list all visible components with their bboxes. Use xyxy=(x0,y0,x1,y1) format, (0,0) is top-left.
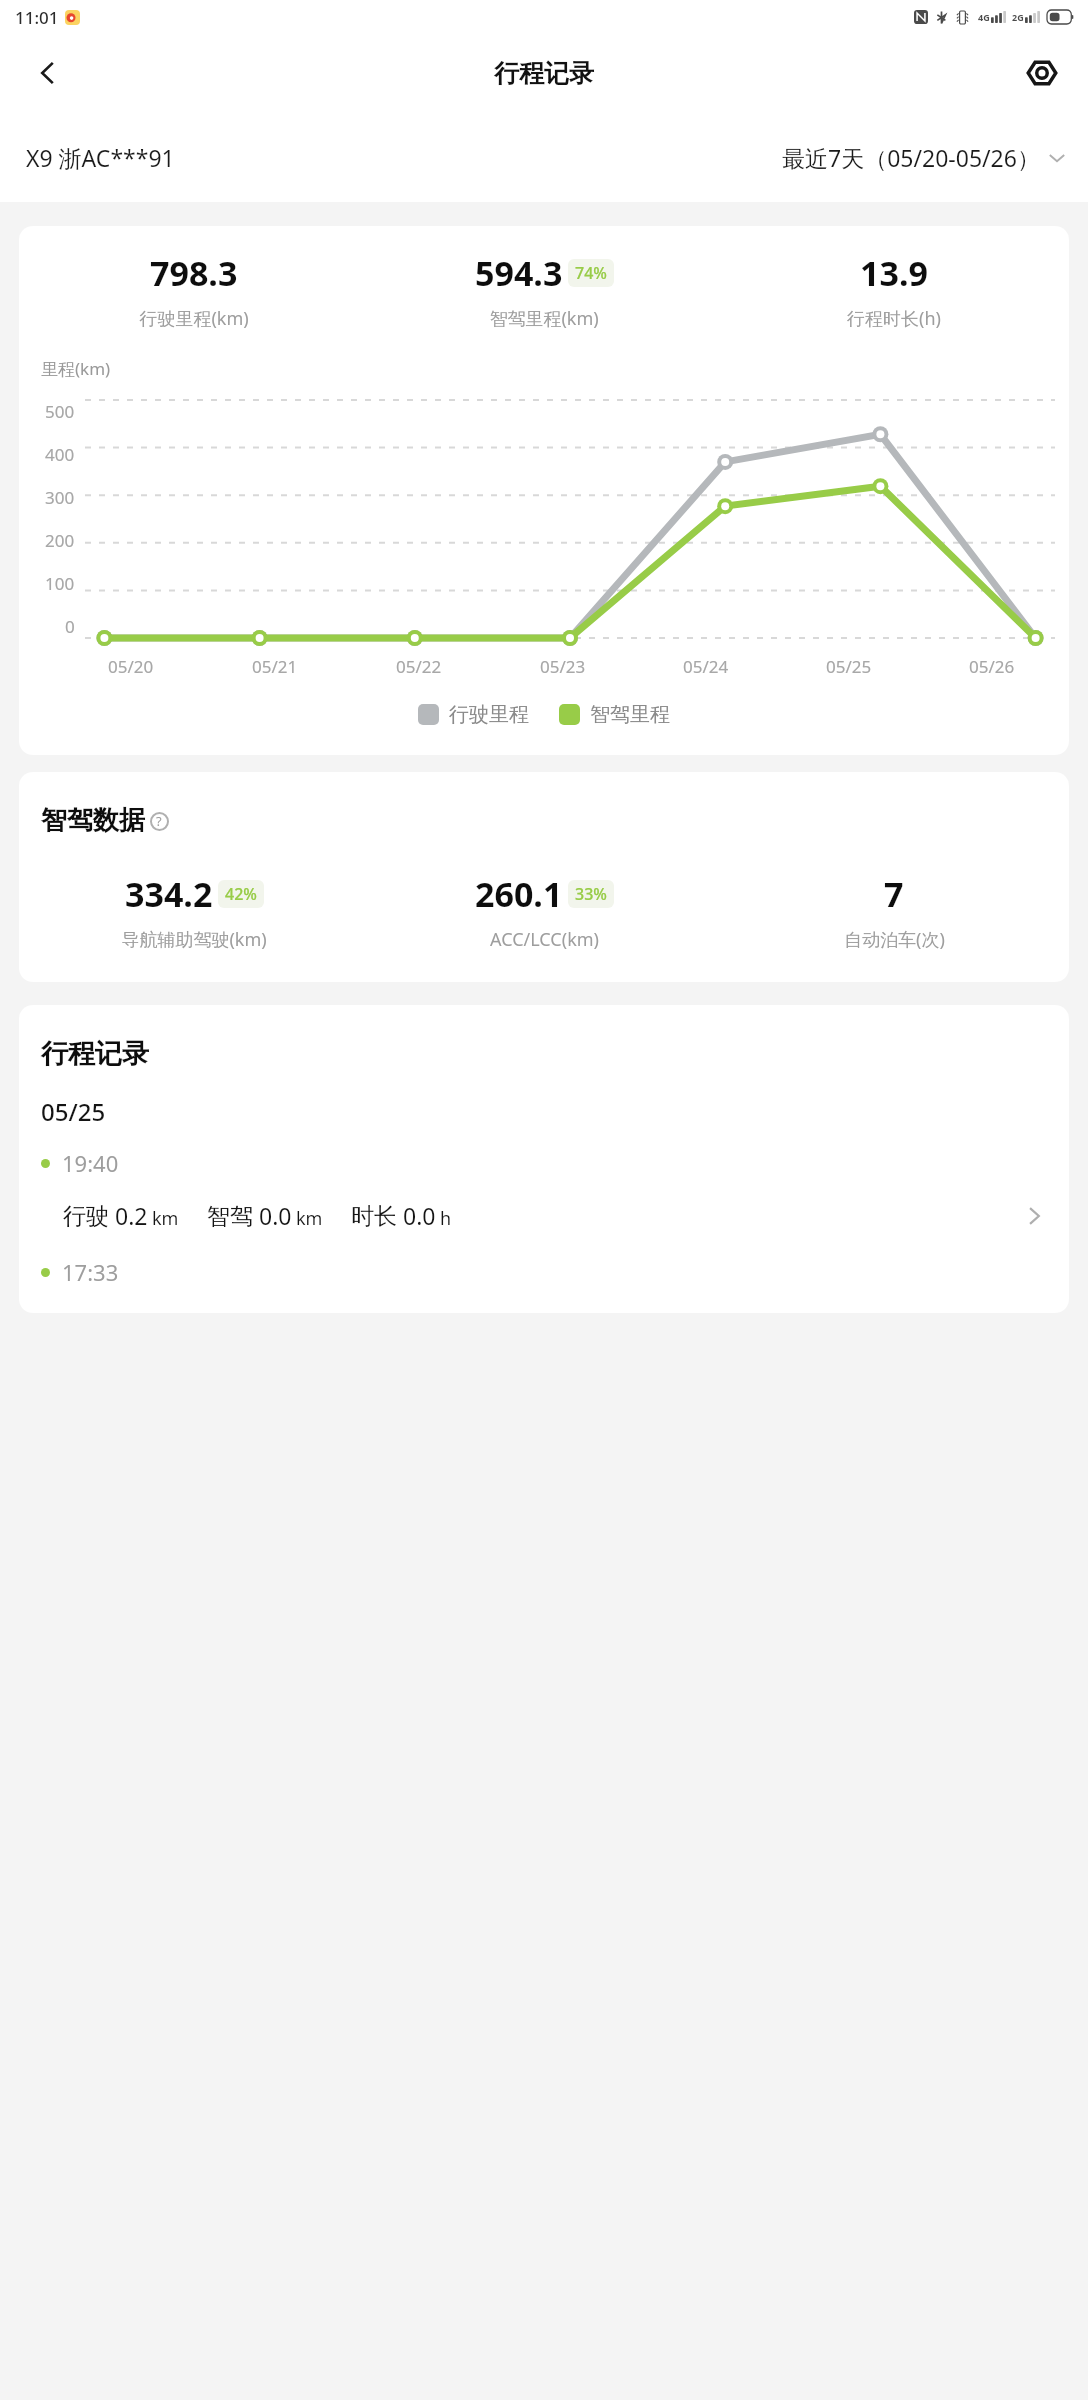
staticText: 11:01 xyxy=(15,6,59,29)
staticText: 798.3 xyxy=(150,250,238,296)
button[interactable]: 260.1 xyxy=(369,871,719,952)
button[interactable]: 13.9 xyxy=(719,250,1069,331)
staticText: 200 xyxy=(45,529,75,552)
staticText: 17:33 xyxy=(62,1257,119,1287)
staticText: 74% xyxy=(575,262,607,284)
staticText: 行驶里程 xyxy=(449,702,529,727)
staticText: 0 xyxy=(65,615,75,638)
staticText: 334.2 xyxy=(125,871,213,917)
staticText: 05/24 xyxy=(683,655,729,678)
staticText: 19:40 xyxy=(62,1148,119,1178)
staticText: 300 xyxy=(45,486,75,509)
staticText: ACC/LCC(km) xyxy=(490,927,599,952)
button[interactable]: Settings xyxy=(1016,47,1068,99)
staticText: 最近7天（05/20-05/26） xyxy=(782,142,1040,173)
staticText: 42% xyxy=(225,883,257,905)
button[interactable]: Back xyxy=(22,47,74,99)
staticText: 500 xyxy=(45,400,75,423)
staticText: 0.0 xyxy=(403,1200,436,1231)
staticText: 智驾里程(km) xyxy=(489,306,599,331)
staticText: 260.1 xyxy=(475,871,563,917)
button[interactable]: 334.2 xyxy=(19,871,369,952)
staticText: 4G xyxy=(978,11,990,23)
staticText: 05/26 xyxy=(969,655,1015,678)
staticText: 05/22 xyxy=(396,655,442,678)
staticText: 行程记录 xyxy=(41,1037,149,1071)
staticText: 7 xyxy=(884,871,904,917)
button[interactable]: 最近7天（05/20-05/26） xyxy=(782,142,1066,173)
staticText: km xyxy=(296,1206,323,1231)
staticText: 2G xyxy=(1012,11,1024,23)
staticText: 智驾里程 xyxy=(590,702,670,727)
staticText: 时长 xyxy=(351,1202,397,1231)
staticText: 05/21 xyxy=(252,655,298,678)
staticText: 05/25 xyxy=(41,1095,106,1128)
button[interactable]: 智驾里程 xyxy=(559,702,670,727)
staticText: 0.2 xyxy=(115,1200,148,1231)
staticText: h xyxy=(440,1206,452,1231)
staticText: 智驾 xyxy=(207,1202,253,1231)
staticText: X9 浙AC***91 xyxy=(26,142,175,173)
staticText: 33% xyxy=(575,883,607,905)
button[interactable]: 7 xyxy=(719,871,1069,952)
button[interactable]: 行驶里程 xyxy=(418,702,529,727)
staticText: 智驾数据 xyxy=(41,804,145,837)
staticText: ? xyxy=(156,812,162,830)
staticText: 行驶里程(km) xyxy=(139,306,249,331)
staticText: 行程时长(h) xyxy=(847,306,941,331)
staticText: 行程记录 xyxy=(494,58,594,89)
staticText: 400 xyxy=(45,443,75,466)
button[interactable]: Help xyxy=(148,810,170,832)
staticText: 05/23 xyxy=(540,655,586,678)
button[interactable]: 19:40 xyxy=(19,1148,1069,1231)
staticText: 05/20 xyxy=(108,655,154,678)
staticText: 05/25 xyxy=(826,655,872,678)
staticText: 13.9 xyxy=(860,250,928,296)
staticText: km xyxy=(152,1206,179,1231)
staticText: 0.0 xyxy=(259,1200,292,1231)
staticText: 行驶 xyxy=(63,1202,109,1231)
button[interactable]: 798.3 xyxy=(19,250,369,331)
staticText: 594.3 xyxy=(475,250,563,296)
staticText: 自动泊车(次) xyxy=(844,927,945,952)
button[interactable]: X9 浙AC***91 xyxy=(26,142,175,173)
staticText: 里程(km) xyxy=(41,357,111,380)
button[interactable]: 594.3 xyxy=(369,250,719,331)
staticText: 100 xyxy=(45,572,75,595)
staticText: 导航辅助驾驶(km) xyxy=(121,927,267,952)
